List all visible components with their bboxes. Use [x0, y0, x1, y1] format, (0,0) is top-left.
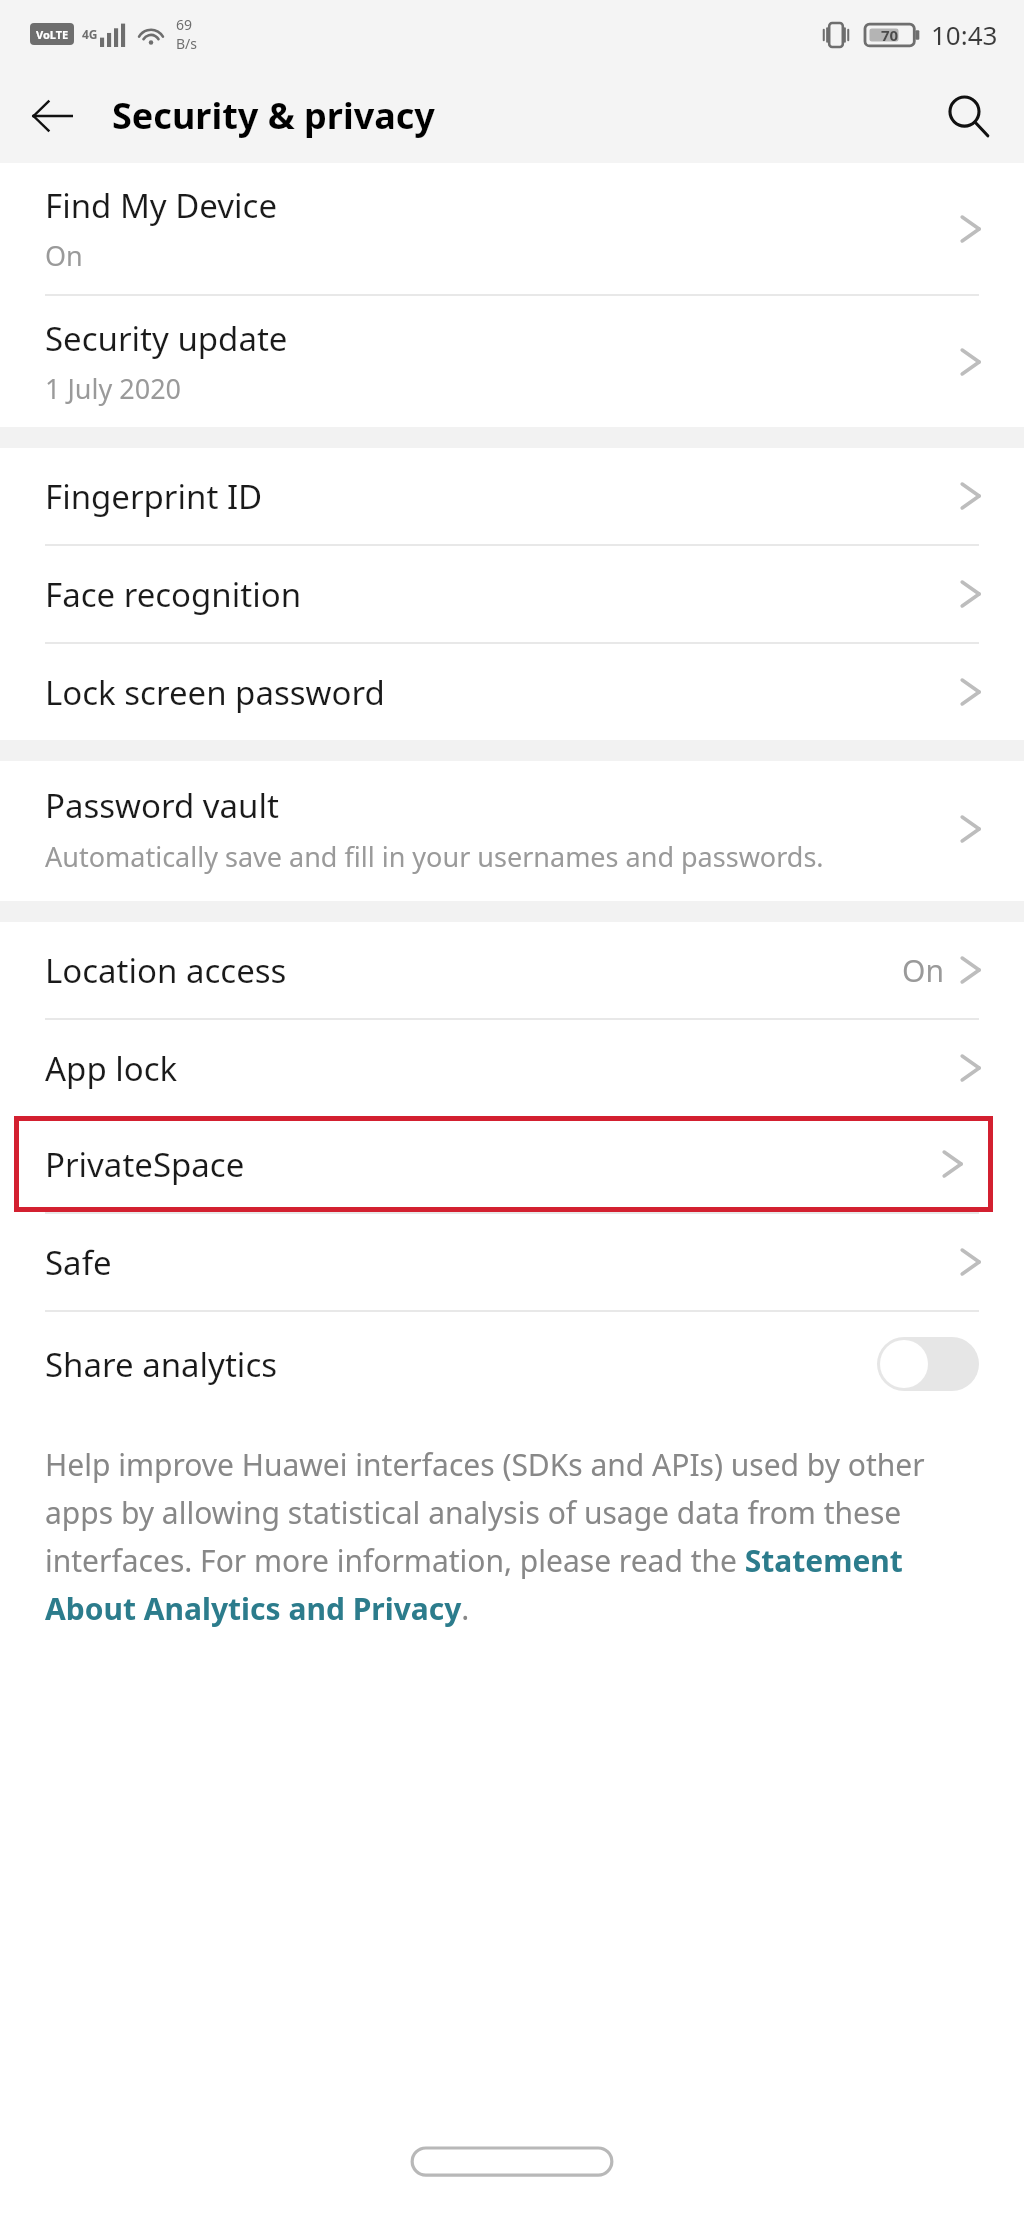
staticText: 69 — [176, 15, 193, 34]
button[interactable]: Share analytics — [0, 1312, 1024, 1416]
staticText: Share analytics — [45, 1342, 877, 1387]
staticText: Automatically save and fill in your user… — [45, 838, 824, 875]
button[interactable]: Lock screen password — [0, 644, 1024, 740]
staticText: Lock screen password — [45, 670, 954, 715]
staticText: Face recognition — [45, 572, 954, 617]
button[interactable]: Fingerprint ID — [0, 448, 1024, 544]
button[interactable]: Safe — [0, 1214, 1024, 1310]
button[interactable]: Search — [930, 78, 1006, 154]
staticText: Password vault — [45, 783, 279, 828]
button[interactable]: Password vault — [0, 761, 1024, 901]
staticText: PrivateSpace — [45, 1142, 936, 1187]
staticText: Safe — [45, 1240, 954, 1285]
button[interactable]: App lock — [0, 1020, 1024, 1116]
staticText: B/s — [176, 34, 198, 53]
staticText: 70 — [881, 25, 899, 45]
staticText: Location access — [45, 948, 902, 993]
button[interactable]: Share analytics toggle, off — [877, 1337, 979, 1391]
staticText: On — [902, 950, 944, 991]
staticText: VoLTE — [36, 27, 69, 42]
staticText: Help improve Huawei interfaces (SDKs and… — [45, 1444, 979, 1628]
button[interactable]: Location access — [0, 922, 1024, 1018]
button[interactable]: Security update — [0, 296, 1024, 427]
staticText: On — [45, 237, 83, 274]
staticText: Fingerprint ID — [45, 474, 954, 519]
staticText: 1 July 2020 — [45, 370, 182, 407]
button[interactable]: Find My Device — [0, 163, 1024, 294]
button[interactable]: Back — [16, 80, 88, 152]
staticText: Security & privacy — [112, 91, 435, 140]
button[interactable]: Face recognition — [0, 546, 1024, 642]
staticText: App lock — [45, 1046, 954, 1091]
button[interactable]: PrivateSpace — [19, 1121, 988, 1207]
staticText: 10:43 — [931, 17, 998, 52]
staticText: Security update — [45, 316, 288, 361]
staticText: Find My Device — [45, 183, 278, 228]
staticText: 4G — [82, 26, 98, 42]
